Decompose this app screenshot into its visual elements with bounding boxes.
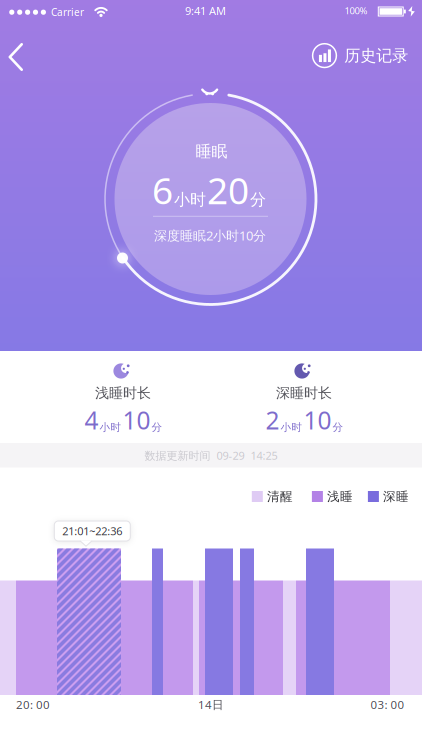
- staticText: 10: [303, 404, 331, 436]
- staticText: 清醒: [267, 489, 293, 504]
- staticText: 10: [122, 404, 150, 436]
- staticText: 21:01~22:36: [62, 524, 122, 538]
- staticText: 分: [151, 421, 162, 434]
- staticText: 睡眠: [195, 142, 227, 161]
- staticText: 深度睡眠2小时10分: [154, 227, 266, 244]
- staticText: 20: [207, 165, 249, 214]
- staticText: 14日: [198, 697, 224, 712]
- staticText: 小时: [280, 421, 302, 434]
- button[interactable]: 历史记录: [312, 43, 408, 68]
- staticText: 20: 00: [16, 697, 50, 712]
- staticText: 2: [265, 404, 279, 436]
- staticText: 9:41 AM: [185, 3, 226, 18]
- staticText: 浅睡: [327, 489, 353, 504]
- staticText: 深睡时长: [276, 384, 332, 402]
- staticText: 4: [84, 404, 98, 436]
- button[interactable]: [57, 548, 121, 695]
- staticText: 深睡: [383, 489, 409, 504]
- staticText: 小时: [99, 421, 121, 434]
- staticText: Carrier: [51, 5, 84, 19]
- staticText: 浅睡时长: [95, 384, 151, 402]
- staticText: 100%: [344, 4, 367, 17]
- staticText: 小时: [174, 190, 206, 210]
- staticText: 分: [250, 190, 266, 210]
- staticText: 分: [332, 421, 343, 434]
- staticText: 数据更新时间 09-29 14:25: [144, 448, 277, 463]
- staticText: 历史记录: [344, 46, 408, 65]
- staticText: 03: 00: [370, 697, 404, 712]
- staticText: 6: [152, 165, 173, 214]
- button[interactable]: [0, 43, 44, 71]
